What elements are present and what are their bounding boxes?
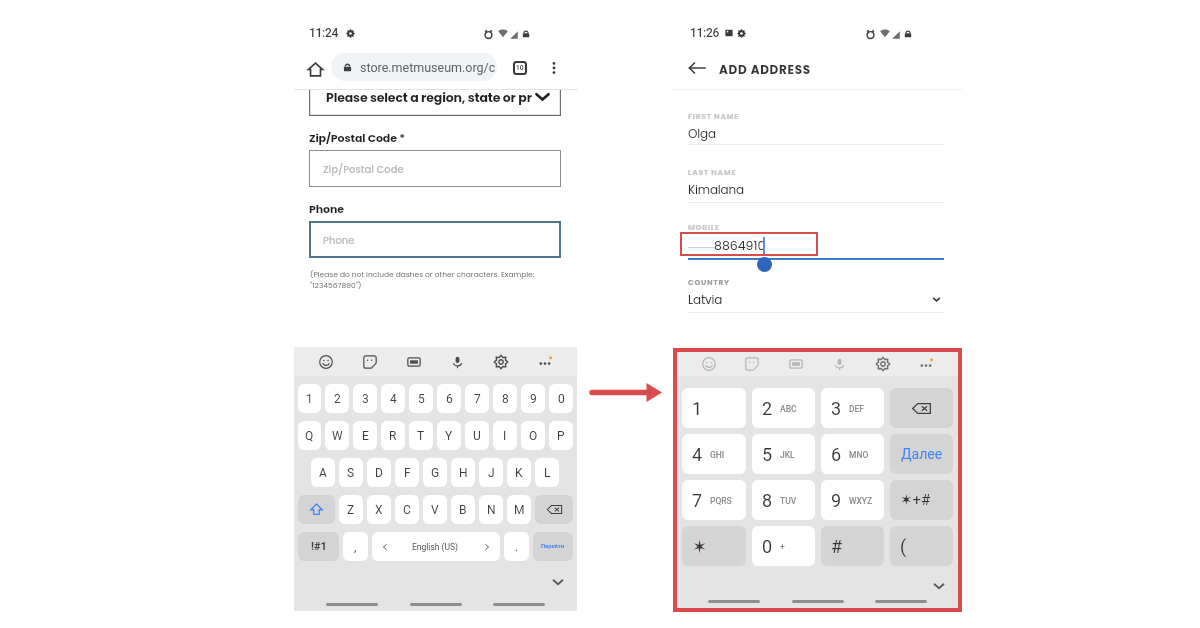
button[interactable]: Emoji (314, 350, 338, 374)
button[interactable]: 1 (682, 388, 746, 428)
staticText: J (488, 466, 495, 480)
button[interactable]: !#1 (298, 532, 339, 561)
button[interactable]: Z (339, 495, 363, 524)
button[interactable]: ✶ (682, 526, 746, 566)
button[interactable]: # (821, 526, 884, 566)
button[interactable]: More options (544, 58, 564, 78)
staticText: , (354, 540, 357, 554)
button[interactable]: Stickers (358, 350, 382, 374)
button[interactable]: GIF (402, 350, 426, 374)
button[interactable]: 6 (821, 434, 884, 474)
staticText: G (431, 466, 440, 480)
button[interactable]: Далее (890, 434, 953, 474)
button[interactable]: 0 (752, 526, 815, 566)
button[interactable]: English (US) (372, 532, 500, 561)
button[interactable]: 0 (549, 384, 573, 413)
button[interactable]: J (479, 458, 503, 487)
button[interactable]: GIF (784, 352, 808, 376)
button[interactable]: Voice input (827, 352, 851, 376)
button[interactable]: 8 (752, 480, 815, 520)
staticText: !#1 (311, 540, 327, 553)
button[interactable]: 5 (752, 434, 815, 474)
button[interactable]: 7 (682, 480, 746, 520)
button[interactable]: Backspace (890, 388, 953, 428)
staticText: 2 (334, 392, 341, 406)
button[interactable]: Shift (298, 495, 335, 524)
button[interactable]: P (549, 421, 573, 450)
staticText: ( (900, 536, 907, 557)
staticText: Zip/Postal Code (323, 162, 404, 176)
button[interactable]: 4 (381, 384, 405, 413)
staticText: JKL (780, 450, 795, 460)
button[interactable]: H (451, 458, 475, 487)
button[interactable]: 9 (821, 480, 884, 520)
button[interactable]: C (395, 495, 419, 524)
staticText: 3 (831, 398, 842, 419)
button[interactable]: I (493, 421, 517, 450)
staticText: Latvia (688, 291, 723, 308)
staticText: F (404, 466, 411, 480)
staticText: Y (445, 429, 453, 443)
button[interactable]: Voice input (445, 350, 469, 374)
button[interactable]: L (535, 458, 559, 487)
button[interactable]: . (504, 532, 529, 561)
button[interactable]: N (479, 495, 503, 524)
button[interactable]: Keyboard settings (489, 350, 513, 374)
button[interactable]: 2 (752, 388, 815, 428)
button[interactable]: Tabs (510, 58, 530, 78)
button[interactable]: G (423, 458, 447, 487)
button[interactable]: 3 (353, 384, 377, 413)
button[interactable]: D (367, 458, 391, 487)
button[interactable]: 6 (437, 384, 461, 413)
button[interactable]: Select country (929, 292, 943, 306)
button[interactable]: F (395, 458, 419, 487)
button[interactable]: ✶+# (890, 480, 953, 520)
button[interactable]: W (325, 421, 349, 450)
button[interactable]: U (465, 421, 489, 450)
staticText: Phone (309, 201, 344, 216)
staticText: ABC (780, 404, 797, 414)
button[interactable]: Hide keyboard (930, 577, 948, 595)
button[interactable]: B (451, 495, 475, 524)
button[interactable]: Please select a region, state or pr (309, 90, 561, 116)
button[interactable]: V (423, 495, 447, 524)
button[interactable]: Stickers (740, 352, 764, 376)
button[interactable]: Phone (309, 221, 561, 258)
button[interactable]: K (507, 458, 531, 487)
button[interactable]: A (311, 458, 335, 487)
button[interactable]: Backspace (535, 495, 573, 524)
staticText: Z (347, 503, 355, 517)
button[interactable]: 5 (409, 384, 433, 413)
button[interactable]: Back (687, 58, 707, 78)
staticText: PQRS (710, 496, 732, 506)
button[interactable]: S (339, 458, 363, 487)
button[interactable]: Keyboard settings (871, 352, 895, 376)
button[interactable]: X (367, 495, 391, 524)
button[interactable]: Hide keyboard (549, 573, 567, 591)
button[interactable]: 4 (682, 434, 746, 474)
button[interactable]: ( (890, 526, 953, 566)
button[interactable]: , (343, 532, 368, 561)
button[interactable]: 7 (465, 384, 489, 413)
button[interactable]: M (507, 495, 531, 524)
button[interactable]: R (381, 421, 405, 450)
button[interactable]: 2 (325, 384, 349, 413)
button[interactable]: Home (305, 59, 325, 79)
button[interactable]: More options (914, 352, 938, 376)
button[interactable]: O (521, 421, 545, 450)
button[interactable]: More options (533, 350, 557, 374)
button[interactable]: Q (298, 421, 321, 450)
button[interactable]: Emoji (697, 352, 721, 376)
button[interactable]: Zip/Postal Code (309, 150, 561, 187)
button[interactable]: 1 (298, 384, 321, 413)
button[interactable]: store.metmuseum.org/c (331, 53, 497, 81)
staticText: 8 (502, 392, 509, 406)
button[interactable]: Y (437, 421, 461, 450)
staticText: Q (305, 429, 314, 443)
button[interactable]: E (353, 421, 377, 450)
button[interactable]: 3 (821, 388, 884, 428)
button[interactable]: 9 (521, 384, 545, 413)
button[interactable]: Перейти (533, 532, 573, 561)
button[interactable]: 8 (493, 384, 517, 413)
button[interactable]: T (409, 421, 433, 450)
